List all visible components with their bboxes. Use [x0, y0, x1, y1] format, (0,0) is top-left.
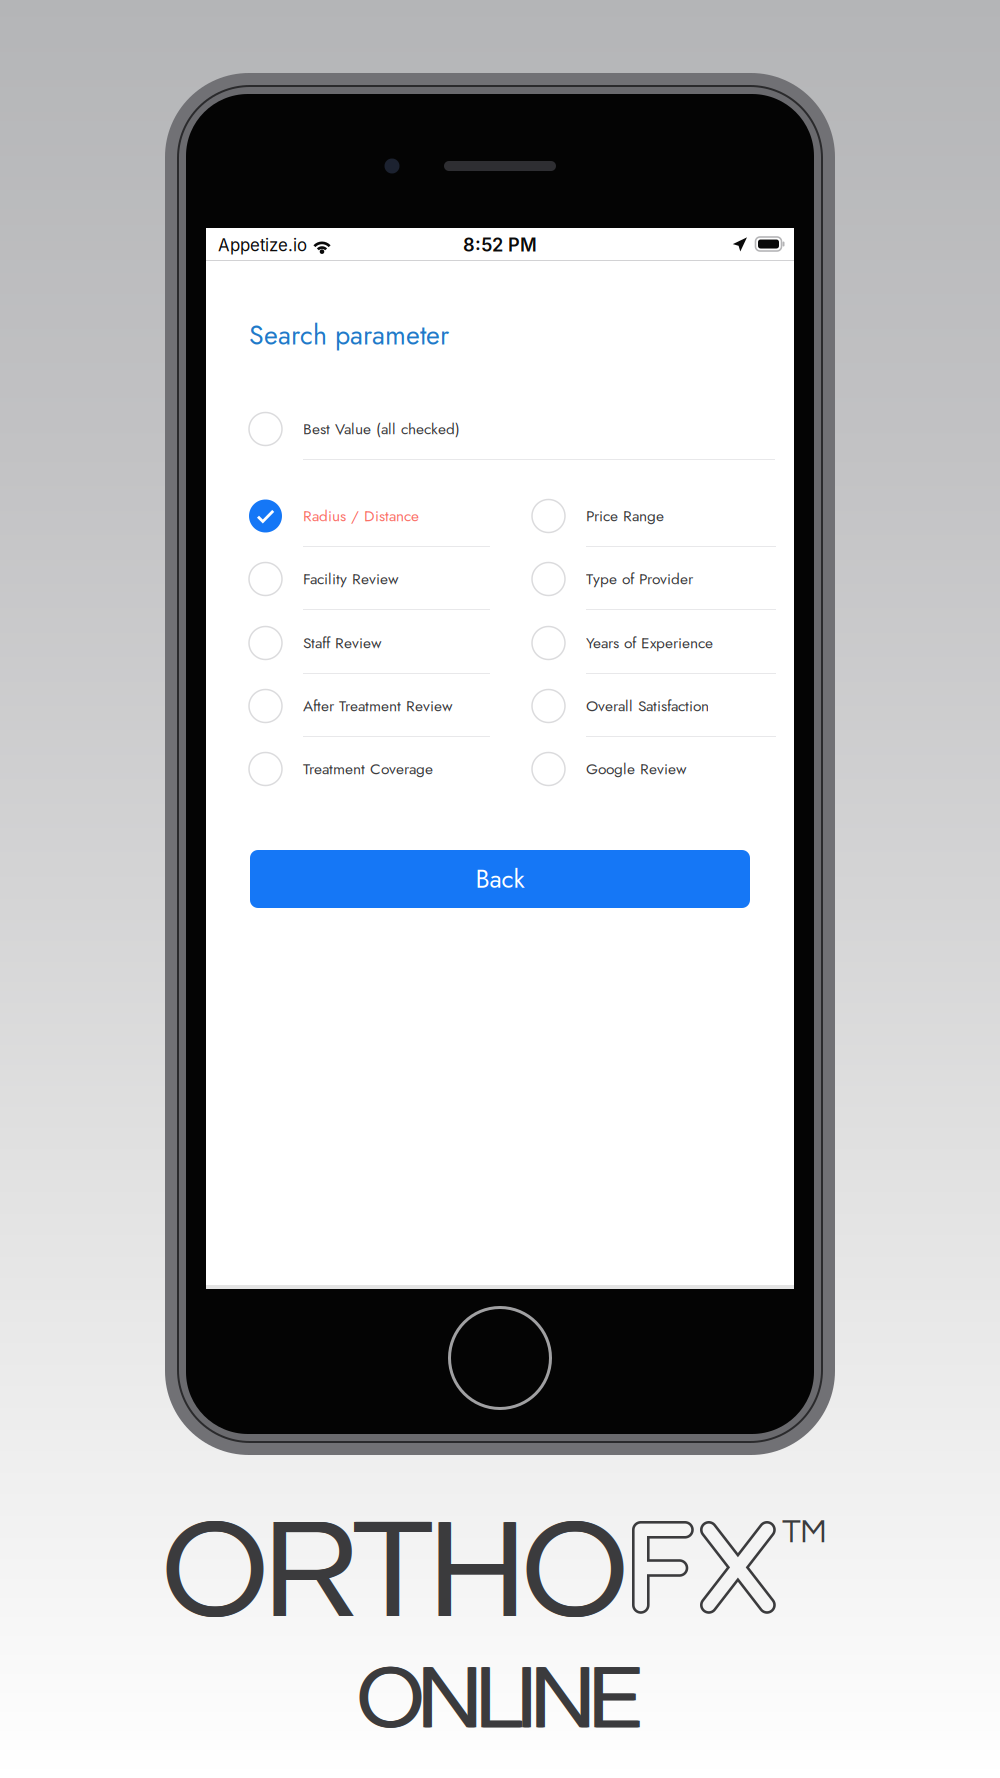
button[interactable]: Price Range: [532, 485, 776, 547]
staticText: Facility Review: [303, 568, 399, 590]
staticText: Back: [475, 861, 524, 897]
staticText: Google Review: [586, 758, 687, 780]
button[interactable]: After Treatment Review: [249, 675, 490, 737]
button[interactable]: Overall Satisfaction: [532, 675, 776, 737]
button[interactable]: Facility Review: [249, 548, 490, 610]
button[interactable]: Treatment Coverage: [249, 738, 490, 800]
staticText: Staff Review: [303, 632, 382, 654]
staticText: 8:52 PM: [463, 234, 537, 256]
button[interactable]: Back: [250, 850, 750, 908]
button[interactable]: Type of Provider: [532, 548, 776, 610]
button[interactable]: Staff Review: [249, 612, 490, 674]
staticText: ORTHO: [161, 1500, 627, 1646]
staticText: Radius / Distance: [303, 505, 419, 527]
staticText: ONLINE: [358, 1654, 643, 1746]
button[interactable]: Best Value (all checked): [249, 398, 775, 460]
staticText: Search parameter: [249, 316, 449, 354]
staticText: Best Value (all checked): [303, 418, 460, 440]
staticText: ONLINE: [356, 1654, 641, 1746]
staticText: ONLINE: [357, 1654, 642, 1746]
staticText: ORTHO: [162, 1500, 628, 1646]
staticText: Treatment Coverage: [303, 758, 433, 780]
staticText: Overall Satisfaction: [586, 695, 709, 717]
staticText: After Treatment Review: [303, 695, 453, 717]
button[interactable]: Radius / Distance: [249, 485, 490, 547]
staticText: Appetize.io: [218, 235, 307, 255]
staticText: ORTHO: [163, 1500, 629, 1646]
staticText: TM: [782, 1515, 827, 1549]
button[interactable]: Google Review: [532, 738, 776, 800]
staticText: Years of Experience: [586, 632, 713, 654]
button[interactable]: Years of Experience: [532, 612, 776, 674]
staticText: Type of Provider: [586, 568, 693, 590]
staticText: Price Range: [586, 505, 664, 527]
